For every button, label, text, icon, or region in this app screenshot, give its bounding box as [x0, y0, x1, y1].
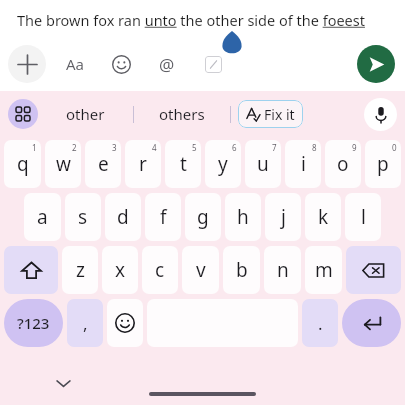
staticText: m — [315, 257, 333, 283]
button[interactable]: z — [62, 246, 98, 294]
button[interactable]: Shift — [4, 246, 58, 294]
button[interactable]: k — [305, 193, 341, 241]
staticText: k — [318, 204, 329, 230]
staticText: . — [318, 312, 323, 335]
staticText: 9 — [352, 142, 357, 153]
staticText: x — [115, 257, 126, 283]
staticText: s — [78, 204, 88, 230]
staticText: o — [337, 151, 349, 177]
staticText: q — [17, 151, 29, 177]
staticText: others — [159, 104, 205, 124]
staticText: Fix it — [264, 105, 295, 124]
button[interactable]: j — [265, 193, 301, 241]
button[interactable]: x — [102, 246, 138, 294]
staticText: Aa — [66, 54, 85, 74]
staticText: y — [218, 151, 228, 177]
staticText: a — [37, 204, 48, 230]
button[interactable]: Add attachment — [8, 45, 46, 83]
staticText: c — [155, 257, 165, 283]
staticText: g — [197, 204, 209, 230]
staticText: other — [66, 104, 105, 124]
staticText: j — [281, 204, 286, 230]
staticText: 1 — [32, 142, 37, 153]
staticText: 8 — [312, 142, 317, 153]
staticText: The brown fox ran unto the other side of… — [17, 10, 365, 30]
button[interactable]: . — [302, 299, 338, 347]
button[interactable]: y — [205, 140, 241, 188]
staticText: i — [301, 151, 306, 177]
staticText: p — [377, 151, 389, 177]
button[interactable]: Backspace — [346, 246, 401, 294]
button[interactable]: Emoji — [107, 299, 143, 347]
staticText: 5 — [192, 142, 197, 153]
button[interactable]: , — [67, 299, 103, 347]
staticText: h — [237, 204, 249, 230]
button[interactable]: r — [125, 140, 161, 188]
staticText: 4 — [152, 142, 157, 153]
button[interactable]: a — [24, 193, 61, 241]
button[interactable]: o — [325, 140, 361, 188]
staticText: b — [236, 257, 248, 283]
staticText: z — [76, 257, 85, 283]
button[interactable]: v — [182, 246, 219, 294]
staticText: 0 — [392, 142, 397, 153]
staticText: d — [117, 204, 129, 230]
button[interactable]: w — [45, 140, 81, 188]
button[interactable]: h — [225, 193, 261, 241]
staticText: ?123 — [17, 313, 50, 333]
button[interactable]: ?123 — [4, 299, 63, 347]
button[interactable]: Enter — [342, 299, 401, 347]
button[interactable]: other — [38, 91, 133, 137]
staticText: r — [139, 151, 147, 177]
staticText: 6 — [232, 142, 237, 153]
button[interactable]: g — [185, 193, 221, 241]
button[interactable]: Fix it — [238, 100, 303, 128]
button[interactable]: c — [142, 246, 178, 294]
button[interactable]: e — [85, 140, 121, 188]
button[interactable]: p — [365, 140, 401, 188]
button[interactable]: n — [264, 246, 301, 294]
staticText: t — [180, 151, 187, 177]
button[interactable]: others — [134, 91, 230, 137]
staticText: 7 — [272, 142, 277, 153]
button[interactable]: Mention — [148, 45, 186, 83]
button[interactable]: Hide keyboard — [48, 368, 78, 398]
staticText: , — [83, 312, 88, 335]
staticText: @ — [159, 53, 175, 76]
staticText: w — [56, 151, 71, 177]
button[interactable]: Text formatting — [56, 45, 94, 83]
staticText: v — [196, 257, 206, 283]
button[interactable]: l — [345, 193, 381, 241]
button[interactable]: Slash command — [194, 45, 232, 83]
staticText: l — [361, 204, 366, 230]
staticText: 2 — [72, 142, 77, 153]
staticText: u — [257, 151, 269, 177]
button[interactable]: t — [165, 140, 201, 188]
button[interactable]: Voice input — [364, 98, 397, 131]
button[interactable]: b — [223, 246, 260, 294]
staticText: e — [98, 151, 109, 177]
staticText: 3 — [112, 142, 117, 153]
staticText: f — [160, 204, 167, 230]
button[interactable]: i — [285, 140, 321, 188]
button[interactable]: s — [65, 193, 101, 241]
button[interactable]: u — [245, 140, 281, 188]
button[interactable]: q — [4, 140, 41, 188]
button[interactable]: d — [105, 193, 141, 241]
button[interactable]: f — [145, 193, 181, 241]
button[interactable]: Toolbar — [8, 99, 38, 129]
button[interactable]: Send — [357, 45, 395, 83]
button[interactable]: m — [305, 246, 342, 294]
staticText: n — [277, 257, 289, 283]
button[interactable]: Emoji — [102, 45, 140, 83]
